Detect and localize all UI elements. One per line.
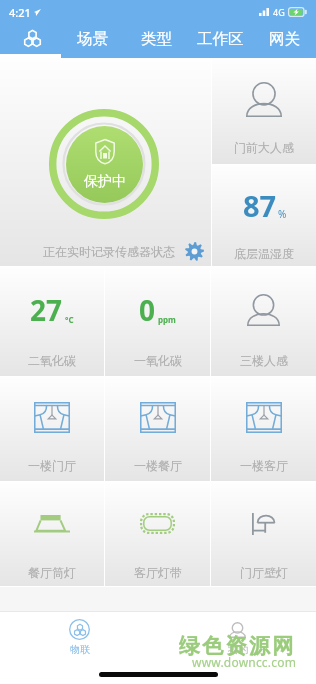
staticText: 底层温湿度	[234, 246, 294, 261]
staticText: 客厅灯带	[134, 565, 182, 580]
staticText: °C	[65, 314, 74, 325]
staticText: 我的	[228, 643, 248, 656]
staticText: %	[278, 207, 287, 221]
staticText: 一楼餐厅	[134, 458, 182, 473]
button[interactable]: 物联	[0, 612, 158, 659]
button[interactable]: 87	[212, 165, 316, 266]
button[interactable]: 门前大人感	[212, 58, 316, 164]
button[interactable]: 物联	[0, 24, 61, 54]
staticText: www.downcc.com	[192, 654, 297, 670]
button[interactable]: 一楼餐厅	[105, 377, 210, 481]
button[interactable]: 27	[0, 267, 104, 376]
button[interactable]: 场景	[61, 24, 124, 54]
staticText: 门前大人感	[234, 140, 294, 155]
other: 设置	[185, 242, 204, 261]
staticText: 工作区	[197, 29, 244, 49]
staticText: 一氧化碳	[134, 353, 182, 368]
button[interactable]: 餐厅筒灯	[0, 482, 104, 586]
staticText: 一楼门厅	[28, 458, 76, 473]
staticText: 0	[139, 291, 156, 329]
staticText: 网关	[269, 29, 300, 49]
staticText: 物联	[70, 643, 90, 656]
staticText: 门厅壁灯	[240, 565, 288, 580]
button[interactable]: 一楼客厅	[211, 377, 316, 481]
button[interactable]: 0	[105, 267, 210, 376]
staticText: 三楼人感	[240, 353, 288, 368]
staticText: 一楼客厅	[240, 458, 288, 473]
staticText: 类型	[141, 29, 172, 49]
button[interactable]: 保护中	[66, 126, 143, 203]
staticText: 4G	[273, 6, 285, 18]
button[interactable]: 保护中	[0, 58, 211, 266]
button[interactable]: 客厅灯带	[105, 482, 210, 586]
staticText: 87	[243, 186, 277, 225]
staticText: 绿色资源网	[179, 633, 296, 659]
staticText: 正在实时记录传感器状态	[43, 244, 175, 259]
button[interactable]: 三楼人感	[211, 267, 316, 376]
staticText: ppm	[158, 314, 176, 325]
staticText: 27	[30, 291, 63, 329]
button[interactable]: 类型	[124, 24, 188, 54]
staticText: 餐厅筒灯	[28, 565, 76, 580]
button[interactable]: 门厅壁灯	[211, 482, 316, 586]
staticText: 保护中	[84, 173, 126, 191]
button[interactable]: 我的	[158, 612, 316, 659]
button[interactable]: 工作区	[188, 24, 252, 54]
staticText: 场景	[77, 29, 108, 49]
staticText: 4:21	[9, 5, 31, 20]
button[interactable]: 网关	[252, 24, 316, 54]
staticText: 二氧化碳	[28, 353, 76, 368]
button[interactable]: 一楼门厅	[0, 377, 104, 481]
